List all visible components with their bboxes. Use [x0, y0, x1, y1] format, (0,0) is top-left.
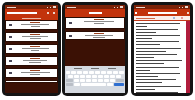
button[interactable]: Search	[5, 9, 58, 16]
button[interactable]	[83, 71, 88, 74]
button[interactable]	[113, 71, 118, 74]
button[interactable]	[71, 71, 76, 74]
button[interactable]	[80, 75, 85, 78]
button[interactable]: Back	[134, 9, 190, 16]
button[interactable]	[119, 71, 124, 74]
button[interactable]	[5, 32, 58, 42]
button[interactable]	[110, 75, 115, 78]
button[interactable]	[89, 71, 94, 74]
button[interactable]	[68, 75, 73, 78]
button[interactable]	[65, 17, 125, 29]
button[interactable]	[65, 31, 125, 40]
button[interactable]: Search	[114, 83, 124, 86]
button[interactable]	[5, 20, 58, 30]
button[interactable]	[92, 79, 97, 82]
button[interactable]	[116, 75, 121, 78]
button[interactable]	[77, 71, 82, 74]
button[interactable]	[86, 79, 91, 82]
button[interactable]	[104, 75, 109, 78]
button[interactable]	[86, 75, 91, 78]
button[interactable]	[104, 79, 109, 82]
button[interactable]	[5, 68, 58, 78]
button[interactable]	[98, 75, 103, 78]
button[interactable]	[66, 71, 70, 74]
button[interactable]	[110, 79, 115, 82]
button[interactable]	[5, 56, 58, 66]
button[interactable]	[5, 80, 58, 83]
button[interactable]	[92, 75, 97, 78]
button[interactable]	[101, 71, 106, 74]
button[interactable]	[74, 79, 79, 82]
button[interactable]	[74, 83, 80, 86]
button[interactable]	[65, 9, 125, 16]
button[interactable]	[95, 71, 100, 74]
button[interactable]	[5, 44, 58, 54]
button[interactable]	[107, 71, 112, 74]
button[interactable]	[80, 79, 85, 82]
button[interactable]	[98, 79, 103, 82]
button[interactable]	[107, 83, 113, 86]
button[interactable]	[74, 75, 79, 78]
